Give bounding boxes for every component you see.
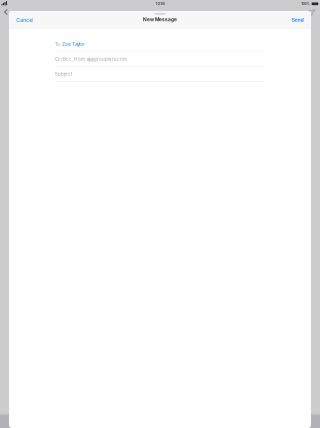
staticText: Subject: [55, 71, 72, 77]
staticText: New Message: [143, 17, 177, 22]
button[interactable]: Back: [2, 7, 10, 17]
button[interactable]: Cc/Bcc, From: aj@groupwrs.com: [55, 52, 265, 67]
staticText: 100%: [301, 2, 309, 6]
button[interactable]: Cancel: [16, 16, 38, 24]
staticText: Send: [292, 17, 304, 23]
staticText: Cancel: [16, 17, 33, 23]
button[interactable]: Send: [286, 16, 304, 24]
staticText: 10:50: [155, 1, 164, 6]
staticText: Zoe Taylor: [62, 42, 85, 47]
staticText: To:: [55, 42, 61, 47]
button[interactable]: To:: [55, 37, 265, 52]
staticText: Cc/Bcc, From: aj@groupwrs.com: [55, 56, 127, 62]
button[interactable]: Subject: [55, 67, 265, 82]
